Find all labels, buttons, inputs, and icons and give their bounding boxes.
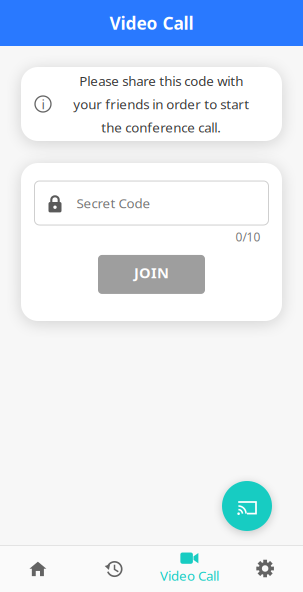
button[interactable]: Cast to device <box>222 481 272 531</box>
staticText: i <box>41 95 44 113</box>
button[interactable]: JOIN <box>98 255 205 294</box>
staticText: JOIN <box>134 263 169 282</box>
button[interactable]: Home <box>0 545 76 592</box>
staticText: Secret Code <box>76 194 150 212</box>
button[interactable]: History <box>76 545 152 592</box>
button[interactable]: Video Call <box>151 545 227 592</box>
staticText: Video Call <box>160 567 219 584</box>
staticText: Please share this code with your friends… <box>73 72 249 136</box>
staticText: Video Call <box>109 11 193 34</box>
staticText: 0/10 <box>235 229 260 245</box>
button[interactable]: Settings <box>227 545 303 592</box>
